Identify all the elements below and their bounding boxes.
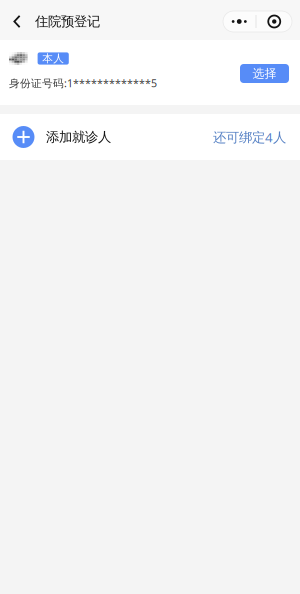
staticText: 本人 (42, 52, 64, 65)
staticText: 添加就诊人 (46, 129, 111, 145)
button[interactable]: 添加就诊人 (0, 114, 300, 160)
button[interactable]: Back (0, 3, 34, 40)
button[interactable]: 选择 (240, 64, 289, 83)
staticText: 身份证号码:1*************5 (9, 76, 157, 90)
staticText: 选择 (252, 66, 276, 81)
button[interactable]: More options (223, 11, 292, 32)
staticText: 住院预登记 (35, 13, 100, 30)
staticText: 还可绑定4人 (213, 128, 286, 146)
